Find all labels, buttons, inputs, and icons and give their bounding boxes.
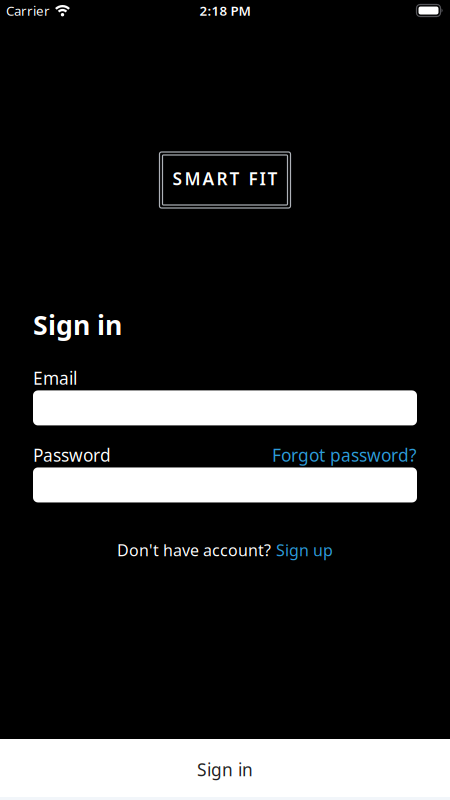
- staticText: Sign in: [197, 758, 253, 781]
- button[interactable]: Forgot password?: [272, 443, 417, 466]
- staticText: Sign up: [276, 539, 333, 561]
- staticText: Carrier: [6, 2, 50, 19]
- staticText: 2:18 PM: [199, 2, 250, 19]
- staticText: SMART FIT: [172, 167, 277, 190]
- staticText: Forgot password?: [272, 443, 417, 466]
- button[interactable]: Sign up: [276, 539, 333, 561]
- staticText: Password: [33, 443, 111, 466]
- staticText: Sign in: [33, 307, 122, 342]
- button[interactable]: Sign in: [0, 739, 450, 800]
- staticText: Email: [33, 366, 77, 389]
- staticText: Don't have account?: [117, 539, 271, 561]
- button[interactable]: Password: [0, 467, 450, 502]
- button[interactable]: Email: [0, 390, 450, 425]
